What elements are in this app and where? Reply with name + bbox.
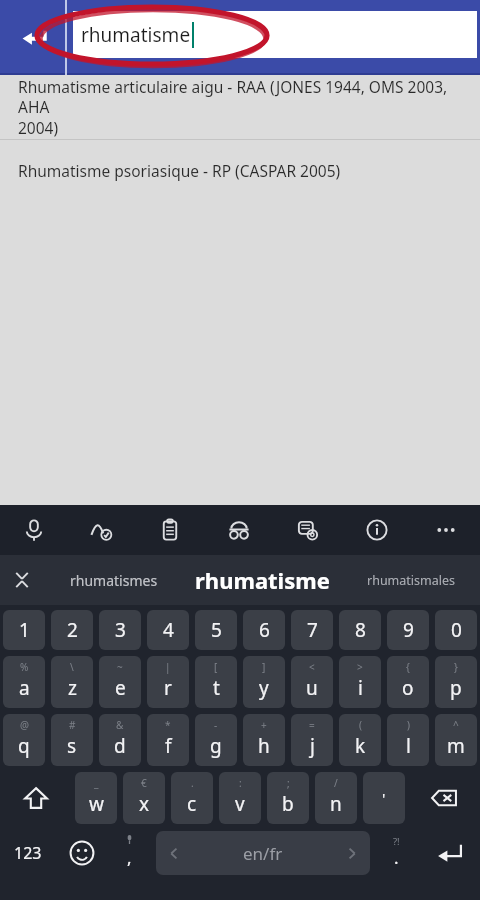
staticText: x xyxy=(139,791,150,817)
button[interactable]: ^ xyxy=(435,714,477,766)
staticText: f xyxy=(165,733,172,759)
staticText: 6 xyxy=(259,617,270,643)
button[interactable]: \ xyxy=(51,656,93,708)
button[interactable]: rhumatisme xyxy=(183,555,342,605)
staticText: ?! xyxy=(393,835,400,848)
staticText: \ xyxy=(70,660,74,674)
button[interactable]: Incognito xyxy=(204,505,273,555)
staticText: q xyxy=(18,733,30,759)
button[interactable]: & xyxy=(99,714,141,766)
staticText: 5 xyxy=(211,617,222,643)
button[interactable]: % xyxy=(3,656,45,708)
staticText: + xyxy=(261,718,267,732)
staticText: < xyxy=(309,660,315,674)
staticText: a xyxy=(19,675,30,701)
staticText: o xyxy=(402,675,414,701)
staticText: d xyxy=(114,733,126,759)
button[interactable]: 8 xyxy=(339,610,381,650)
button[interactable]: 1 xyxy=(3,610,45,650)
button[interactable]: , xyxy=(107,827,152,879)
button[interactable]: / xyxy=(315,772,357,824)
button[interactable]: Rhumatisme psoriasique - RP (CASPAR 2005… xyxy=(0,140,480,200)
button[interactable]: ~ xyxy=(99,656,141,708)
staticText: & xyxy=(116,718,124,732)
staticText: m xyxy=(447,733,465,759)
button[interactable]: 0 xyxy=(435,610,477,650)
staticText: . xyxy=(191,776,194,790)
button[interactable]: Stickers xyxy=(273,505,342,555)
staticText: ~ xyxy=(117,660,123,674)
button[interactable]: 4 xyxy=(147,610,189,650)
button[interactable]: Clipboard xyxy=(136,505,204,555)
button[interactable]: # xyxy=(51,714,93,766)
staticText: # xyxy=(69,718,76,732)
button[interactable]: 2 xyxy=(51,610,93,650)
staticText: 8 xyxy=(355,617,366,643)
button[interactable]: | xyxy=(147,656,189,708)
button[interactable]: < xyxy=(291,656,333,708)
button[interactable]: 123 xyxy=(0,827,56,879)
button[interactable]: More xyxy=(411,505,480,555)
button[interactable]: en/fr xyxy=(156,831,370,875)
button[interactable]: € xyxy=(123,772,165,824)
button[interactable]: - xyxy=(195,714,237,766)
button[interactable]: [ xyxy=(195,656,237,708)
button[interactable]: + xyxy=(243,714,285,766)
button[interactable]: > xyxy=(339,656,381,708)
button[interactable]: Expand suggestions xyxy=(0,555,44,605)
button[interactable]: Back xyxy=(8,12,60,64)
staticText: 0 xyxy=(451,617,462,643)
staticText: 2 xyxy=(67,617,78,643)
button[interactable]: ' xyxy=(363,772,405,824)
button[interactable]: 3 xyxy=(99,610,141,650)
button[interactable]: 6 xyxy=(243,610,285,650)
button[interactable]: Emoji xyxy=(56,827,107,879)
button[interactable]: rhumatismes xyxy=(44,555,183,605)
button[interactable]: ?! xyxy=(374,827,419,879)
button[interactable]: = xyxy=(291,714,333,766)
button[interactable]: ] xyxy=(243,656,285,708)
button[interactable]: : xyxy=(219,772,261,824)
button[interactable]: 5 xyxy=(195,610,237,650)
button[interactable]: . xyxy=(171,772,213,824)
button[interactable]: Info xyxy=(342,505,411,555)
staticText: > xyxy=(357,660,363,674)
staticText: c xyxy=(187,791,197,817)
button[interactable]: 9 xyxy=(387,610,429,650)
button[interactable]: * xyxy=(147,714,189,766)
button[interactable]: @ xyxy=(3,714,45,766)
button[interactable]: _ xyxy=(75,772,117,824)
staticText: rhumatisme xyxy=(81,22,191,48)
button[interactable]: ) xyxy=(387,714,429,766)
staticText: ) xyxy=(407,718,410,732)
button[interactable]: Enter xyxy=(419,827,480,879)
button[interactable]: } xyxy=(435,656,477,708)
staticText: en/fr xyxy=(243,842,283,865)
button[interactable]: Shift xyxy=(0,769,72,827)
button[interactable]: rhumatisme xyxy=(73,11,477,58)
staticText: { xyxy=(406,660,410,674)
staticText: @ xyxy=(20,718,29,732)
staticText: | xyxy=(165,660,171,674)
staticText: 3 xyxy=(115,617,126,643)
staticText: : xyxy=(239,776,242,790)
button[interactable]: ( xyxy=(339,714,381,766)
button[interactable]: 7 xyxy=(291,610,333,650)
staticText: r xyxy=(164,675,172,701)
button[interactable]: rhumatismales xyxy=(342,555,480,605)
button[interactable]: { xyxy=(387,656,429,708)
button[interactable]: ; xyxy=(267,772,309,824)
staticText: v xyxy=(235,791,245,817)
staticText: s xyxy=(67,733,77,759)
staticText: 1 xyxy=(19,617,30,643)
staticText: [ xyxy=(214,660,218,674)
button[interactable]: Voice input xyxy=(0,505,68,555)
staticText: rhumatismales xyxy=(367,572,456,589)
staticText: n xyxy=(330,791,342,817)
button[interactable]: Handwriting xyxy=(68,505,136,555)
button[interactable]: Backspace xyxy=(408,769,480,827)
staticText: p xyxy=(450,675,462,701)
staticText: € xyxy=(141,776,147,790)
staticText: 7 xyxy=(307,617,318,643)
button[interactable]: Rhumatisme articulaire aigu - RAA (JONES… xyxy=(0,75,480,139)
